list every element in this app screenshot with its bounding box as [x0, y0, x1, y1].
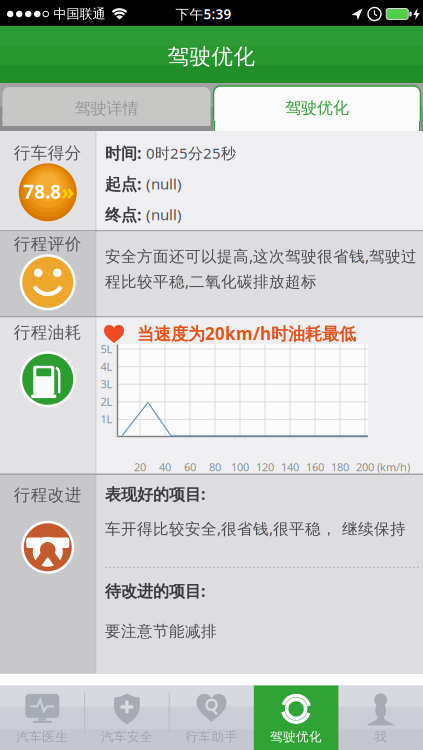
staticText: 行车得分 — [14, 142, 82, 163]
staticText: 3L — [100, 376, 112, 391]
staticText: 1L — [100, 411, 112, 426]
staticText: » — [61, 177, 74, 206]
staticText: 行程油耗 — [14, 322, 82, 343]
staticText: 我 — [374, 729, 387, 745]
button[interactable]: 驾驶优化 — [254, 685, 338, 750]
staticText: 0时25分25秒 — [146, 143, 236, 163]
staticText: 待改进的项目: — [105, 580, 205, 602]
staticText: 200 — [356, 459, 374, 474]
staticText: 下午5:39 — [175, 5, 231, 23]
button[interactable]: 查看行车得分详情 — [19, 163, 77, 221]
staticText: 40 — [159, 459, 171, 474]
staticText: 120 — [256, 459, 274, 474]
staticText: 140 — [281, 459, 299, 474]
staticText: 4L — [100, 359, 112, 374]
staticText: 行车助手 — [185, 729, 237, 745]
staticText: (null) — [146, 173, 182, 194]
staticText: 驾驶优化 — [285, 98, 349, 118]
staticText: 2L — [100, 394, 112, 409]
staticText: 要注意节能减排 — [105, 622, 217, 641]
staticText: 行程评价 — [14, 233, 82, 254]
staticText: 100 — [231, 459, 249, 474]
staticText: 汽车医生 — [16, 729, 68, 745]
staticText: 5L — [100, 341, 112, 356]
staticText: 80 — [209, 459, 221, 474]
button[interactable]: 驾驶详情 — [0, 83, 212, 131]
staticText: 起点: — [105, 173, 141, 195]
staticText: 20 — [134, 459, 146, 474]
staticText: 安全方面还可以提高,这次驾驶很省钱,驾驶过程比较平稳,二氧化碳排放超标 — [105, 245, 417, 292]
button[interactable]: 汽车安全 — [85, 685, 169, 750]
button[interactable]: 行车助手 — [169, 685, 254, 750]
staticText: 时间: — [105, 142, 141, 164]
staticText: 160 — [306, 459, 324, 474]
staticText: (null) — [146, 204, 182, 225]
staticText: 当速度为20km/h时油耗最低 — [137, 322, 356, 345]
staticText: (km/h) — [377, 459, 410, 474]
staticText: 驾驶优化 — [167, 43, 255, 70]
button[interactable]: 汽车医生 — [0, 685, 85, 750]
staticText: 驾驶优化 — [270, 729, 322, 745]
button[interactable]: 我 — [338, 685, 423, 750]
staticText: 180 — [331, 459, 349, 474]
staticText: 驾驶详情 — [74, 98, 138, 119]
staticText: 60 — [184, 459, 196, 474]
staticText: 终点: — [105, 204, 141, 225]
staticText: 行程改进 — [14, 484, 82, 505]
staticText: 车开得比较安全,很省钱,很平稳， 继续保持 — [105, 518, 406, 539]
staticText: 78.8 — [23, 178, 61, 204]
button[interactable]: 驾驶优化 — [212, 83, 423, 131]
staticText: 表现好的项目: — [105, 483, 205, 505]
staticText: 中国联通 — [53, 6, 105, 22]
staticText: 汽车安全 — [101, 729, 153, 745]
